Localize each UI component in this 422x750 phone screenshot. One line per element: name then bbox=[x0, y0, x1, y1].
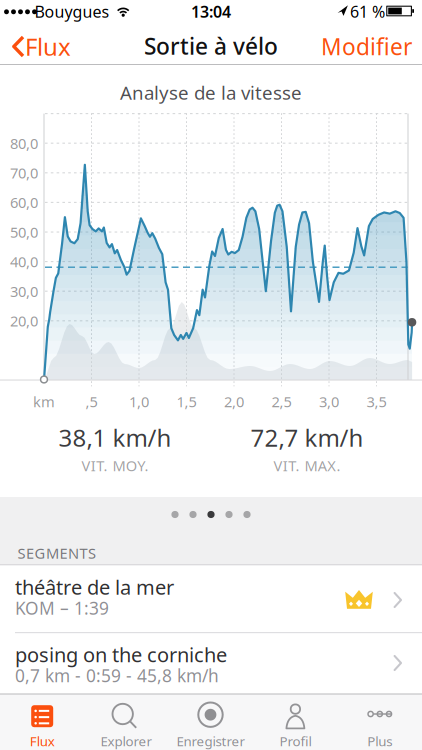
staticText: posing on the corniche bbox=[15, 641, 227, 668]
staticText: Bouygues bbox=[34, 1, 109, 22]
button[interactable]: Flux bbox=[8, 33, 78, 60]
staticText: Flux bbox=[30, 732, 55, 750]
button[interactable]: Explorer bbox=[84, 694, 169, 750]
staticText: km bbox=[33, 392, 55, 411]
staticText: 30,0 bbox=[10, 281, 38, 301]
staticText: VIT. MAX. bbox=[273, 456, 341, 475]
staticText: 70,0 bbox=[10, 163, 38, 183]
button[interactable]: théâtre de la mer bbox=[0, 565, 422, 632]
staticText: 1,5 bbox=[176, 392, 196, 411]
staticText: ,5 bbox=[85, 392, 97, 411]
button[interactable]: Enregistrer bbox=[169, 694, 253, 750]
staticText: 0,7 km - 0:59 - 45,8 km/h bbox=[15, 664, 219, 687]
staticText: 38,1 km/h bbox=[58, 422, 171, 453]
staticText: 2,0 bbox=[224, 392, 244, 411]
staticText: Explorer bbox=[101, 732, 153, 750]
staticText: 3,5 bbox=[366, 392, 386, 411]
staticText: 3,0 bbox=[319, 392, 339, 411]
staticText: 60,0 bbox=[10, 193, 38, 212]
staticText: 1,0 bbox=[129, 392, 149, 411]
button[interactable]: Profil bbox=[253, 694, 338, 750]
staticText: SEGMENTS bbox=[17, 543, 96, 563]
staticText: Analyse de la vitesse bbox=[120, 80, 302, 105]
staticText: 61 % bbox=[350, 1, 385, 22]
button[interactable]: Plus bbox=[338, 694, 422, 750]
button[interactable]: Flux bbox=[0, 694, 84, 750]
staticText: Enregistrer bbox=[176, 732, 245, 750]
staticText: KOM – 1:39 bbox=[15, 596, 109, 619]
staticText: Modifier bbox=[321, 31, 412, 61]
staticText: 40,0 bbox=[10, 252, 38, 271]
staticText: 72,7 km/h bbox=[250, 422, 363, 453]
staticText: Sortie à vélo bbox=[144, 31, 278, 61]
staticText: 20,0 bbox=[10, 311, 38, 331]
staticText: Flux bbox=[25, 31, 71, 62]
staticText: 50,0 bbox=[10, 222, 38, 242]
button[interactable]: posing on the corniche bbox=[0, 632, 422, 694]
staticText: Plus bbox=[367, 732, 392, 750]
staticText: VIT. MOY. bbox=[81, 456, 149, 475]
button[interactable]: Modifier bbox=[308, 28, 412, 64]
staticText: théâtre de la mer bbox=[15, 574, 174, 600]
staticText: 2,5 bbox=[271, 392, 291, 411]
staticText: Profil bbox=[279, 732, 311, 750]
staticText: 80,0 bbox=[10, 133, 38, 153]
staticText: 13:04 bbox=[191, 1, 231, 22]
